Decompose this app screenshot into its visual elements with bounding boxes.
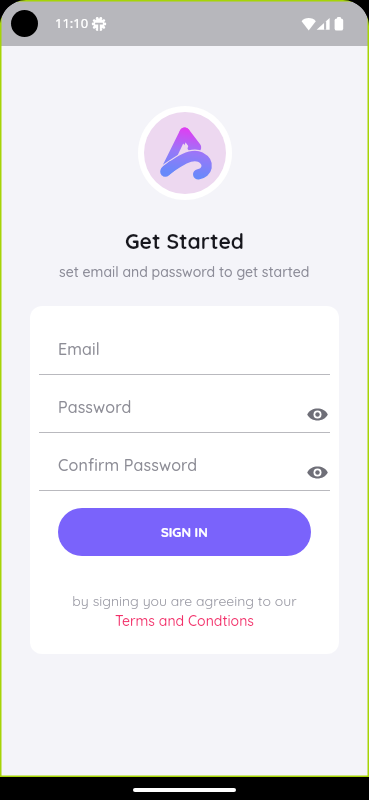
staticText: Confirm Password (58, 455, 304, 475)
button[interactable]: Show password (304, 401, 330, 427)
button[interactable]: Confirm Password (39, 454, 330, 490)
button[interactable]: Password (39, 396, 330, 432)
staticText: SIGN IN (161, 524, 208, 540)
staticText: by signing you are agreeing to our (72, 592, 297, 610)
button[interactable]: Terms and Condtions (115, 612, 254, 630)
staticText: Email (58, 339, 304, 359)
button[interactable]: Show password (304, 459, 330, 485)
staticText: Password (58, 397, 304, 417)
staticText: Get Started (125, 228, 244, 254)
staticText: 11:10 (55, 14, 89, 32)
staticText: set email and password to get started (59, 263, 310, 281)
button[interactable]: Email (39, 338, 330, 374)
button[interactable]: SIGN IN (58, 508, 311, 556)
